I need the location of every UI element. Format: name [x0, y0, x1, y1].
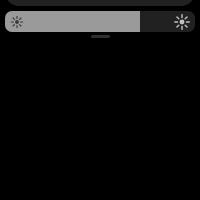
button[interactable]: Increase brightness [173, 13, 191, 31]
button[interactable]: Decrease brightness [9, 14, 25, 30]
button[interactable] [5, 0, 195, 6]
button[interactable]: Brightness slider [5, 11, 195, 32]
